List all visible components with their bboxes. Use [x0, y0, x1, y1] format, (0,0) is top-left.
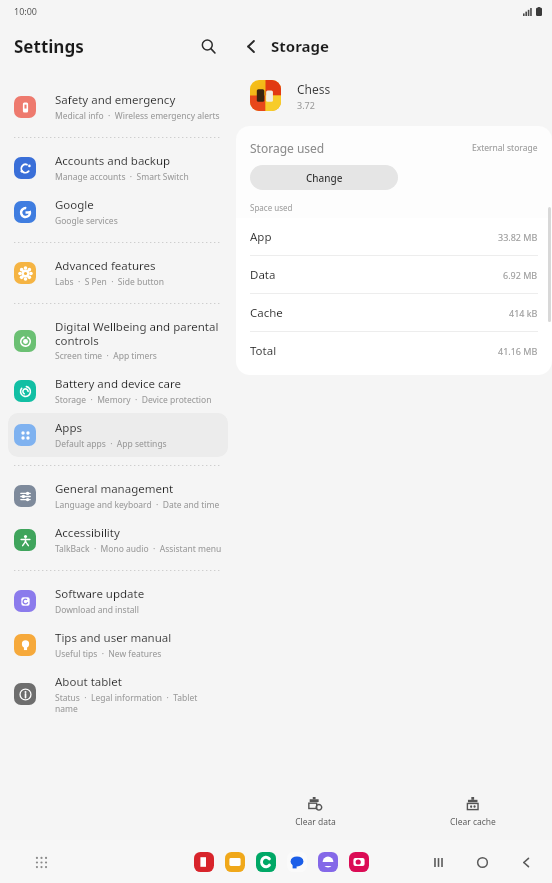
- staticText: Storage: [271, 36, 329, 56]
- staticText: Download and install: [55, 604, 139, 616]
- staticText: Tips and user manual: [55, 630, 172, 646]
- button[interactable]: Battery and device care: [8, 369, 228, 413]
- staticText: Medical info · Wireless emergency alerts: [55, 110, 220, 122]
- staticText: Google services: [55, 215, 118, 227]
- staticText: Software update: [55, 586, 145, 602]
- staticText: Manage accounts · Smart Switch: [55, 171, 189, 183]
- button[interactable]: Digital Wellbeing and parental controls: [8, 312, 228, 369]
- button[interactable]: My Files: [224, 851, 246, 873]
- staticText: Clear cache: [450, 816, 496, 828]
- button[interactable]: Total: [236, 331, 552, 369]
- button[interactable]: Safety and emergency: [8, 85, 228, 129]
- staticText: Settings: [14, 35, 84, 58]
- staticText: Labs · S Pen · Side button: [55, 276, 164, 288]
- staticText: Accessibility: [55, 525, 120, 541]
- button[interactable]: Search: [194, 32, 222, 60]
- staticText: About tablet: [55, 674, 122, 690]
- staticText: General management: [55, 481, 174, 497]
- button[interactable]: Accounts and backup: [8, 146, 228, 190]
- button[interactable]: General management: [8, 474, 228, 518]
- button[interactable]: Recents: [426, 850, 450, 874]
- staticText: Total: [250, 343, 277, 359]
- button[interactable]: About tablet: [8, 667, 228, 721]
- staticText: Google: [55, 197, 94, 213]
- button[interactable]: Software update: [8, 579, 228, 623]
- staticText: Cache: [250, 305, 283, 321]
- button[interactable]: Camera: [348, 851, 370, 873]
- button[interactable]: Cache: [236, 293, 552, 331]
- staticText: Screen time · App timers: [55, 350, 157, 362]
- button[interactable]: Gallery: [193, 851, 215, 873]
- staticText: 33.82 MB: [498, 231, 538, 243]
- staticText: Default apps · App settings: [55, 438, 167, 450]
- button[interactable]: Phone: [255, 851, 277, 873]
- button[interactable]: Accessibility: [8, 518, 228, 562]
- button[interactable]: Apps list: [28, 849, 54, 875]
- staticText: Safety and emergency: [55, 92, 176, 108]
- button[interactable]: Back: [236, 31, 266, 61]
- staticText: Apps: [55, 420, 83, 436]
- button[interactable]: Google: [8, 190, 228, 234]
- staticText: Data: [250, 267, 276, 283]
- staticText: TalkBack · Mono audio · Assistant menu: [55, 543, 222, 555]
- staticText: 414 kB: [509, 307, 538, 319]
- staticText: 41.16 MB: [498, 345, 538, 357]
- button[interactable]: App: [236, 218, 552, 255]
- staticText: Language and keyboard · Date and time: [55, 499, 220, 511]
- button[interactable]: Clear cache: [394, 784, 552, 840]
- button[interactable]: Messages: [286, 851, 308, 873]
- staticText: External storage: [472, 142, 538, 154]
- staticText: Advanced features: [55, 258, 156, 274]
- button[interactable]: Clear data: [236, 784, 394, 840]
- staticText: Digital Wellbeing and parental controls: [55, 319, 222, 348]
- staticText: Accounts and backup: [55, 153, 171, 169]
- button[interactable]: Back: [514, 850, 538, 874]
- staticText: Battery and device care: [55, 376, 182, 392]
- staticText: Useful tips · New features: [55, 648, 162, 660]
- button[interactable]: Tips and user manual: [8, 623, 228, 667]
- staticText: App: [250, 229, 272, 245]
- staticText: Chess: [297, 81, 331, 97]
- staticText: Status · Legal information · Tablet name: [55, 692, 222, 714]
- button[interactable]: Change: [250, 165, 398, 190]
- staticText: Change: [306, 171, 343, 185]
- staticText: 10:00: [14, 5, 38, 17]
- staticText: Space used: [250, 202, 293, 213]
- button[interactable]: Internet: [317, 851, 339, 873]
- button[interactable]: Apps: [8, 413, 228, 457]
- staticText: 3.72: [297, 99, 315, 111]
- button[interactable]: Home: [470, 850, 494, 874]
- button[interactable]: Advanced features: [8, 251, 228, 295]
- button[interactable]: Data: [236, 255, 552, 293]
- staticText: 6.92 MB: [503, 269, 538, 281]
- staticText: Clear data: [295, 816, 336, 828]
- staticText: Storage used: [250, 140, 325, 156]
- staticText: Storage · Memory · Device protection: [55, 394, 212, 406]
